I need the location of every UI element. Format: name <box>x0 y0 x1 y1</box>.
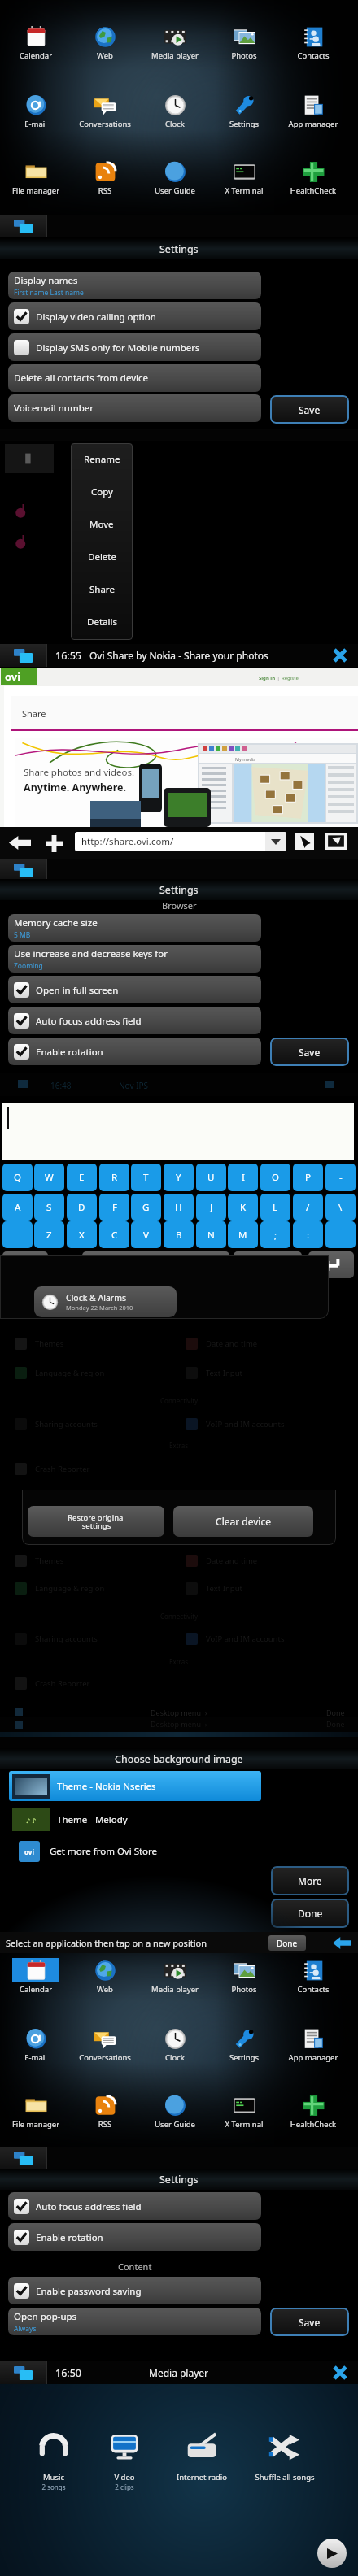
button[interactable]: Save <box>270 395 349 424</box>
button[interactable]: Delete <box>71 541 133 573</box>
button[interactable]: Task switcher <box>0 644 46 667</box>
button[interactable]: Enter <box>308 1251 354 1278</box>
button[interactable]: ♪ ♪ <box>9 1807 261 1833</box>
button[interactable]: W <box>34 1164 64 1191</box>
button[interactable]: K <box>228 1194 258 1221</box>
button[interactable]: Display names <box>8 272 261 299</box>
button[interactable]: Task switcher <box>0 215 46 237</box>
button[interactable]: Save <box>270 1038 349 1066</box>
button[interactable]: Q <box>2 1164 33 1191</box>
button[interactable]: Task switcher <box>0 859 46 881</box>
button[interactable]: Delete all contacts from device <box>8 364 261 392</box>
button[interactable]: X <box>67 1221 97 1248</box>
button[interactable]: J <box>196 1194 226 1221</box>
button[interactable]: Conversations <box>71 2026 139 2065</box>
button[interactable]: Move <box>71 508 133 541</box>
button[interactable]: X Terminal <box>210 159 278 198</box>
button[interactable]: http://share.ovi.com/ <box>75 832 286 851</box>
button[interactable]: RSS <box>71 2093 139 2132</box>
button[interactable]: I <box>228 1164 258 1191</box>
button[interactable] <box>325 1221 356 1248</box>
button[interactable]: Open pop-ups <box>8 2308 261 2335</box>
button[interactable]: E-mail <box>2 2026 70 2065</box>
button[interactable]: ; <box>260 1221 290 1248</box>
button[interactable]: E <box>67 1164 97 1191</box>
button[interactable]: App manager <box>279 93 347 132</box>
button[interactable]: H <box>164 1194 194 1221</box>
button[interactable]: Copy <box>71 476 133 508</box>
button[interactable]: Voicemail number <box>8 394 261 422</box>
button[interactable] <box>2 1221 33 1248</box>
button[interactable]: Back <box>8 835 31 850</box>
button[interactable]: App manager <box>279 2026 347 2065</box>
button[interactable]: Enable rotation <box>8 1038 261 1065</box>
button[interactable]: Clock & Alarms <box>34 1286 177 1317</box>
button[interactable]: HealthCheck <box>279 2093 347 2132</box>
button[interactable]: Memory cache size <box>8 914 261 942</box>
button[interactable]: E-mail <box>2 93 70 132</box>
button[interactable]: Clear device <box>173 1506 313 1537</box>
button[interactable]: Display SMS only for Mobile numbers <box>8 333 261 361</box>
button[interactable]: Done <box>268 1935 306 1951</box>
button[interactable]: Auto focus address field <box>8 1007 261 1034</box>
button[interactable]: Z <box>34 1221 64 1248</box>
button[interactable]: U <box>196 1164 226 1191</box>
button[interactable]: Open in full screen <box>8 976 261 1003</box>
button[interactable]: \ <box>325 1194 356 1221</box>
button[interactable]: R <box>99 1164 129 1191</box>
button[interactable]: Done <box>271 1899 349 1928</box>
button[interactable]: D <box>67 1194 97 1221</box>
button[interactable]: Media player <box>141 24 209 63</box>
button[interactable]: Photos <box>210 24 278 63</box>
button[interactable]: Y <box>164 1164 194 1191</box>
button[interactable]: Display video calling option <box>8 302 261 330</box>
button[interactable]: Conversations <box>71 93 139 132</box>
button[interactable]: File manager <box>2 2093 70 2132</box>
button[interactable]: Full screen <box>325 833 347 850</box>
button[interactable]: : <box>293 1221 323 1248</box>
button[interactable]: Back <box>325 1932 358 1953</box>
button[interactable]: Clock <box>141 2026 209 2065</box>
button[interactable]: - <box>325 1164 356 1191</box>
button[interactable]: Clock <box>141 93 209 132</box>
button[interactable]: User Guide <box>141 2093 209 2132</box>
button[interactable]: A <box>2 1194 33 1221</box>
button[interactable]: Contacts <box>279 24 347 63</box>
button[interactable]: X Terminal <box>210 2093 278 2132</box>
button[interactable]: RSS <box>71 159 139 198</box>
button[interactable]: Settings <box>210 93 278 132</box>
button[interactable]: O <box>260 1164 290 1191</box>
button[interactable]: Play <box>317 2539 347 2568</box>
button[interactable]: C <box>99 1221 129 1248</box>
button[interactable]: B <box>164 1221 194 1248</box>
button[interactable]: Use increase and decrease keys for <box>8 945 261 973</box>
button[interactable]: Task switcher <box>0 2147 46 2169</box>
button[interactable]: 1#+ <box>234 1251 302 1278</box>
button[interactable]: N <box>196 1221 226 1248</box>
button[interactable]: Restore original settings <box>28 1506 164 1537</box>
button[interactable]: Share <box>71 573 133 606</box>
button[interactable]: Rename <box>71 443 133 476</box>
button[interactable]: Task switcher <box>0 2361 46 2384</box>
button[interactable]: V <box>131 1221 161 1248</box>
button[interactable]: More <box>271 1866 349 1895</box>
button[interactable]: Video <box>84 2431 165 2491</box>
button[interactable]: ovi <box>9 1838 261 1865</box>
button[interactable]: Settings <box>210 2026 278 2065</box>
button[interactable]: Calendar <box>2 24 70 63</box>
button[interactable]: File manager <box>2 159 70 198</box>
button[interactable]: Space <box>82 1251 229 1278</box>
button[interactable]: Enable rotation <box>8 2223 261 2251</box>
button[interactable]: Details <box>71 606 133 638</box>
button[interactable]: / <box>293 1194 323 1221</box>
button[interactable]: F <box>99 1194 129 1221</box>
button[interactable]: G <box>131 1194 161 1221</box>
button[interactable]: Calendar <box>2 1958 70 1997</box>
button[interactable]: HealthCheck <box>279 159 347 198</box>
button[interactable]: Save <box>270 2308 349 2336</box>
button[interactable]: M <box>228 1221 258 1248</box>
button[interactable]: S <box>34 1194 64 1221</box>
button[interactable]: New window <box>44 833 63 853</box>
button[interactable]: Contacts <box>279 1958 347 1997</box>
button[interactable]: Enable password saving <box>8 2277 261 2304</box>
